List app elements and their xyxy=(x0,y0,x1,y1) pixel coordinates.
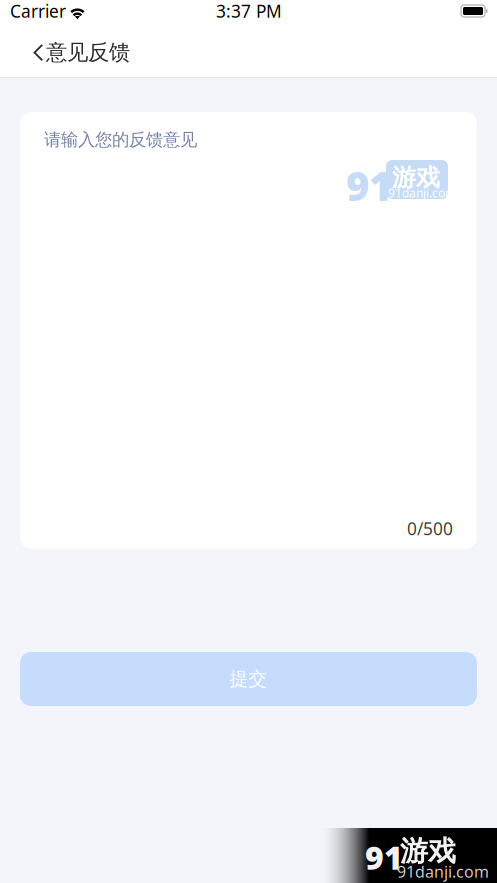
staticText: 91danji.com xyxy=(388,185,456,201)
staticText: 0/500 xyxy=(407,517,453,540)
staticText: 91 xyxy=(346,159,392,212)
button[interactable]: 意见反馈 xyxy=(0,22,144,76)
staticText: 91danji.com xyxy=(397,861,489,882)
staticText: 游戏 xyxy=(392,163,440,192)
staticText: 3:37 PM xyxy=(216,0,282,22)
staticText: 游戏 xyxy=(400,834,456,868)
staticText: 提交 xyxy=(229,667,267,690)
button[interactable]: 提交 xyxy=(20,652,477,706)
staticText: 91 xyxy=(365,836,403,878)
staticText: 请输入您的反馈意见 xyxy=(44,129,197,150)
staticText: 意见反馈 xyxy=(46,39,130,66)
staticText: Carrier xyxy=(10,0,66,22)
